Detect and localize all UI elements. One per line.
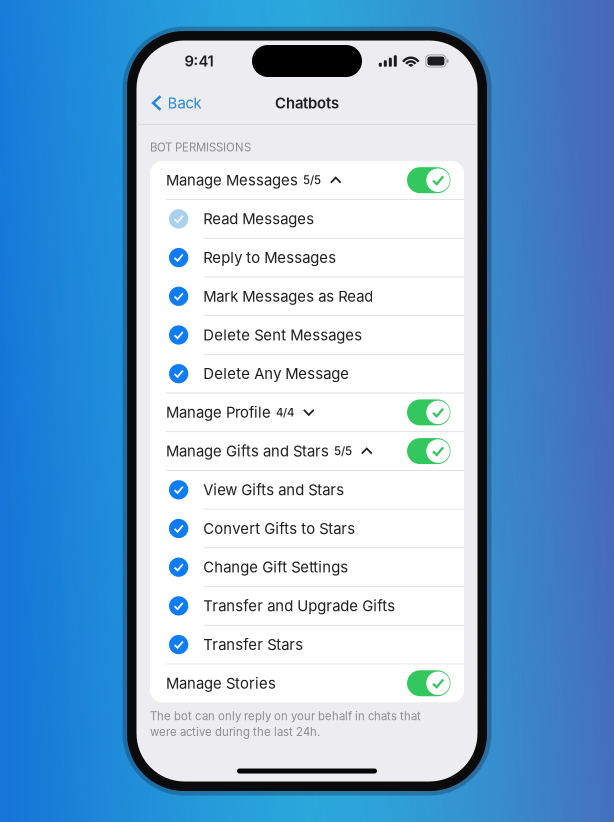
- staticText: were active during the last 24h.: [150, 725, 320, 739]
- staticText: Mark Messages as Read: [203, 287, 373, 305]
- staticText: View Gifts and Stars: [203, 481, 344, 499]
- staticText: 9:41: [184, 52, 213, 70]
- button[interactable]: Read Messages: [150, 200, 464, 238]
- button[interactable]: Convert Gifts to Stars: [150, 509, 464, 547]
- staticText: Manage Gifts and Stars: [166, 442, 329, 460]
- button[interactable]: Delete Sent Messages: [150, 316, 464, 354]
- button[interactable]: Manage Stories: [150, 664, 464, 702]
- button[interactable]: Manage Messages: [150, 161, 464, 199]
- staticText: 5/5: [303, 173, 321, 187]
- staticText: BOT PERMISSIONS: [150, 140, 251, 154]
- staticText: Convert Gifts to Stars: [203, 519, 355, 537]
- button[interactable]: Back: [143, 88, 209, 118]
- staticText: Chatbots: [275, 94, 339, 112]
- staticText: Read Messages: [203, 210, 314, 228]
- staticText: Manage Stories: [166, 674, 276, 692]
- staticText: Delete Sent Messages: [203, 326, 362, 344]
- staticText: The bot can only reply on your behalf in…: [150, 709, 421, 723]
- staticText: Back: [167, 94, 201, 112]
- staticText: Reply to Messages: [203, 249, 336, 266]
- staticText: Change Gift Settings: [203, 558, 348, 576]
- button[interactable]: Transfer Stars: [150, 626, 464, 664]
- staticText: 5/5: [334, 444, 352, 458]
- staticText: Transfer Stars: [203, 636, 303, 653]
- button[interactable]: Manage Gifts and Stars: [150, 432, 464, 470]
- button[interactable]: Manage Profile: [150, 393, 464, 431]
- staticText: Manage Profile: [166, 403, 271, 421]
- button[interactable]: Transfer and Upgrade Gifts: [150, 587, 464, 625]
- staticText: 4/4: [276, 405, 294, 419]
- staticText: Transfer and Upgrade Gifts: [203, 597, 395, 615]
- button[interactable]: Delete Any Message: [150, 355, 464, 393]
- button[interactable]: Change Gift Settings: [150, 548, 464, 586]
- button[interactable]: View Gifts and Stars: [150, 471, 464, 509]
- button[interactable]: Reply to Messages: [150, 239, 464, 277]
- staticText: Delete Any Message: [203, 365, 349, 383]
- button[interactable]: Mark Messages as Read: [150, 277, 464, 315]
- staticText: Manage Messages: [166, 171, 298, 189]
